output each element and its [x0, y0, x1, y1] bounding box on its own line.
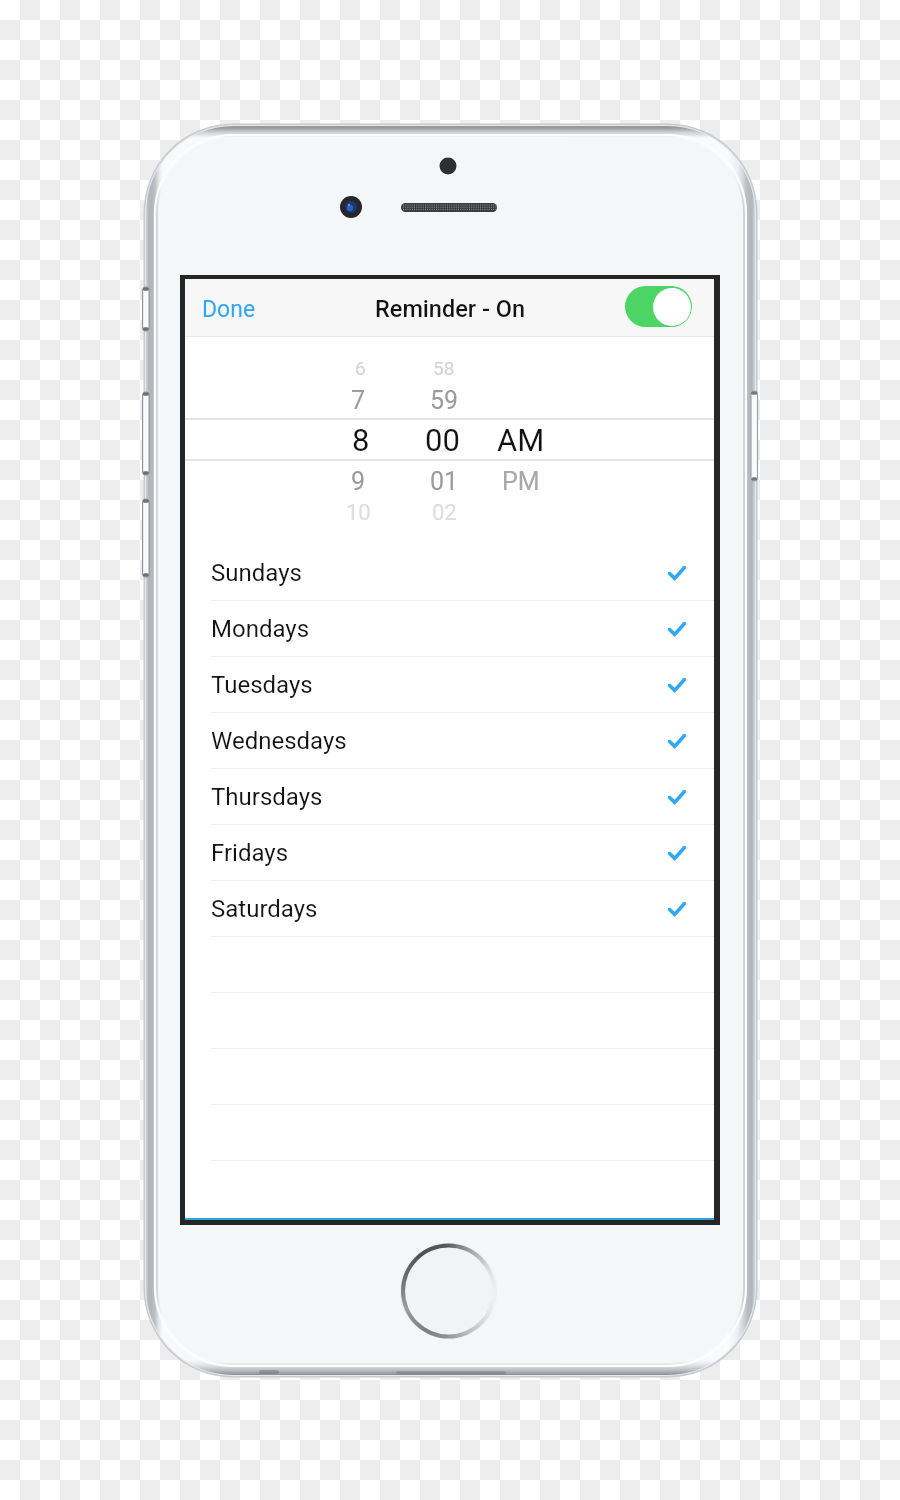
staticText: Reminder - On — [375, 295, 525, 323]
button[interactable]: Saturdays — [185, 881, 714, 937]
button[interactable]: Reminder toggle — [625, 286, 692, 327]
staticText: Wednesdays — [211, 727, 347, 755]
staticText: Fridays — [211, 839, 289, 867]
button[interactable]: Done — [202, 296, 256, 323]
button[interactable]: Fridays — [185, 825, 714, 881]
button[interactable]: Wednesdays — [185, 713, 714, 769]
button[interactable]: Thursdays — [185, 769, 714, 825]
staticText: 6 — [355, 357, 366, 379]
staticText: Sundays — [211, 559, 302, 587]
staticText: 00 — [425, 422, 460, 458]
staticText: AM — [497, 422, 545, 458]
staticText: Thursdays — [211, 783, 323, 811]
staticText: 9 — [351, 467, 366, 496]
button[interactable]: Mondays — [185, 601, 714, 657]
staticText: Done — [202, 296, 256, 323]
staticText: 8 — [352, 422, 370, 458]
staticText: 02 — [432, 500, 457, 526]
button[interactable]: Sundays — [185, 545, 714, 601]
staticText: 59 — [430, 386, 459, 415]
staticText: 01 — [430, 467, 459, 496]
staticText: 58 — [433, 357, 455, 379]
button[interactable]: Tuesdays — [185, 657, 714, 713]
staticText: Saturdays — [211, 895, 318, 923]
staticText: Tuesdays — [211, 671, 313, 699]
staticText: 7 — [351, 386, 366, 415]
staticText: 10 — [346, 500, 371, 526]
staticText: PM — [502, 467, 540, 496]
staticText: Mondays — [211, 615, 310, 643]
